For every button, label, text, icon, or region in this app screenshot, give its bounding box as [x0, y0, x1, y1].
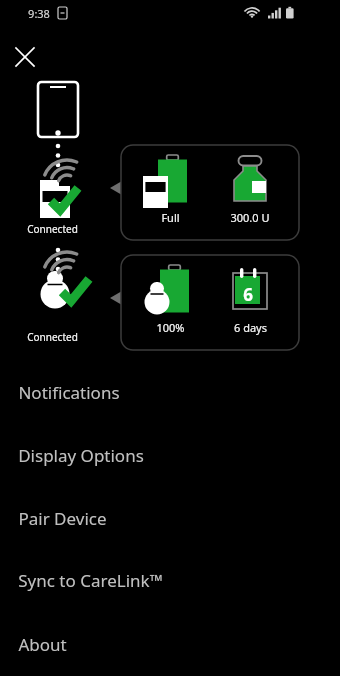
button[interactable]: Notifications [0, 371, 340, 413]
staticText: Notifications [18, 381, 120, 404]
button[interactable]: Display Options [0, 434, 340, 476]
staticText: Pair Device [18, 507, 107, 530]
button[interactable]: Full [121, 145, 299, 240]
staticText: Sync to CareLink™ [18, 569, 163, 592]
button[interactable]: Close [7, 39, 43, 75]
staticText: Full [161, 210, 180, 225]
staticText: Display Options [18, 444, 144, 467]
staticText: 300.0 U [230, 210, 270, 225]
staticText: 100% [156, 320, 185, 335]
button[interactable]: Pair Device [0, 497, 340, 539]
staticText: Connected [27, 222, 78, 236]
button[interactable]: Sync to CareLink™ [0, 559, 340, 601]
staticText: 6 days [234, 320, 267, 335]
staticText: About [18, 633, 67, 656]
button[interactable]: About [0, 623, 340, 665]
staticText: Connected [27, 330, 78, 344]
button[interactable]: 100% [121, 255, 299, 350]
staticText: 9:38 [28, 6, 50, 21]
staticText: 6 [243, 283, 253, 306]
